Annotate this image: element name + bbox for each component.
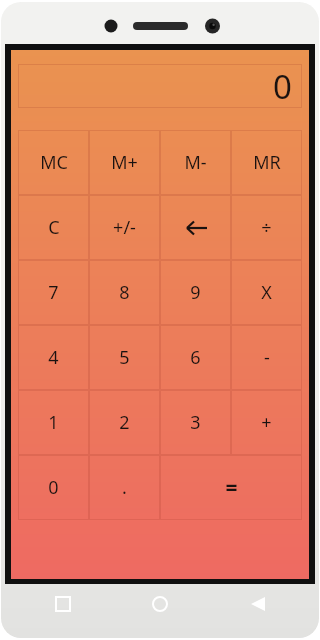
staticText: M+: [111, 150, 138, 175]
staticText: X: [261, 280, 272, 305]
button[interactable]: 6: [160, 325, 231, 390]
staticText: 6: [190, 345, 201, 370]
button[interactable]: C: [18, 195, 89, 260]
staticText: 3: [190, 410, 201, 435]
button[interactable]: 5: [89, 325, 160, 390]
staticText: M-: [184, 150, 207, 175]
staticText: 0: [273, 64, 292, 108]
staticText: +/-: [113, 215, 136, 240]
button[interactable]: 4: [18, 325, 89, 390]
staticText: 4: [48, 345, 59, 370]
staticText: MR: [253, 150, 281, 175]
staticText: C: [48, 215, 60, 240]
button[interactable]: -: [231, 325, 302, 390]
button[interactable]: =: [160, 455, 302, 520]
staticText: +: [261, 410, 272, 435]
staticText: 1: [48, 410, 59, 435]
staticText: ÷: [261, 215, 272, 240]
button[interactable]: MR: [231, 130, 302, 195]
button[interactable]: 0: [18, 455, 89, 520]
button[interactable]: 7: [18, 260, 89, 325]
button[interactable]: 0: [18, 64, 302, 108]
staticText: 9: [190, 280, 201, 305]
staticText: 7: [48, 280, 59, 305]
button[interactable]: .: [89, 455, 160, 520]
staticText: .: [122, 475, 127, 500]
button[interactable]: +/-: [89, 195, 160, 260]
staticText: 0: [48, 475, 59, 500]
button[interactable]: 9: [160, 260, 231, 325]
button[interactable]: Recent apps: [28, 583, 98, 625]
button[interactable]: M-: [160, 130, 231, 195]
button[interactable]: 8: [89, 260, 160, 325]
staticText: MC: [40, 150, 68, 175]
button[interactable]: +: [231, 390, 302, 455]
button[interactable]: 3: [160, 390, 231, 455]
button[interactable]: Back: [223, 583, 293, 625]
staticText: -: [264, 345, 270, 370]
staticText: 2: [119, 410, 130, 435]
staticText: 5: [119, 345, 130, 370]
button[interactable]: MC: [18, 130, 89, 195]
button[interactable]: 1: [18, 390, 89, 455]
button[interactable]: 2: [89, 390, 160, 455]
button[interactable]: X: [231, 260, 302, 325]
staticText: 8: [119, 280, 130, 305]
button[interactable]: Backspace: [160, 195, 231, 260]
button[interactable]: ÷: [231, 195, 302, 260]
button[interactable]: Home: [125, 583, 195, 625]
staticText: =: [225, 473, 238, 502]
button[interactable]: M+: [89, 130, 160, 195]
